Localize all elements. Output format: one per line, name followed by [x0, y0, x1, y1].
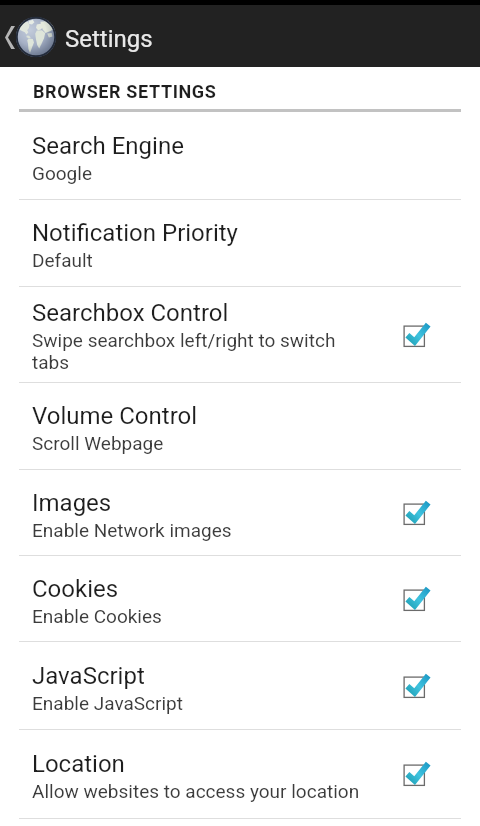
- staticText: JavaScript: [32, 662, 145, 690]
- button[interactable]: Search Engine: [0, 112, 480, 200]
- staticText: Cookies: [32, 575, 119, 603]
- button[interactable]: Cookies: [0, 556, 480, 642]
- button[interactable]: Location: [0, 730, 480, 819]
- staticText: BROWSER SETTINGS: [33, 81, 217, 102]
- button[interactable]: Notification Priority: [0, 200, 480, 287]
- staticText: Volume Control: [32, 402, 198, 430]
- staticText: Allow websites to access your location: [32, 780, 360, 802]
- button[interactable]: JavaScript: [0, 642, 480, 730]
- staticText: Enable JavaScript: [32, 692, 183, 714]
- staticText: Enable Cookies: [32, 605, 162, 627]
- button[interactable]: Searchbox Control: [0, 287, 480, 383]
- staticText: Enable Network images: [32, 519, 232, 541]
- button[interactable]: Images: [0, 470, 480, 556]
- button[interactable]: Navigate up: [0, 9, 60, 63]
- staticText: Default: [32, 249, 93, 271]
- staticText: Notification Priority: [32, 219, 238, 247]
- staticText: Google: [32, 162, 92, 184]
- staticText: Search Engine: [32, 132, 184, 160]
- staticText: Swipe searchbox left/right to switch tab…: [32, 329, 362, 374]
- staticText: Searchbox Control: [32, 299, 229, 327]
- staticText: Scroll Webpage: [32, 432, 164, 454]
- button[interactable]: Volume Control: [0, 383, 480, 470]
- staticText: Location: [32, 750, 125, 778]
- staticText: Settings: [65, 25, 153, 53]
- staticText: Images: [32, 489, 112, 517]
